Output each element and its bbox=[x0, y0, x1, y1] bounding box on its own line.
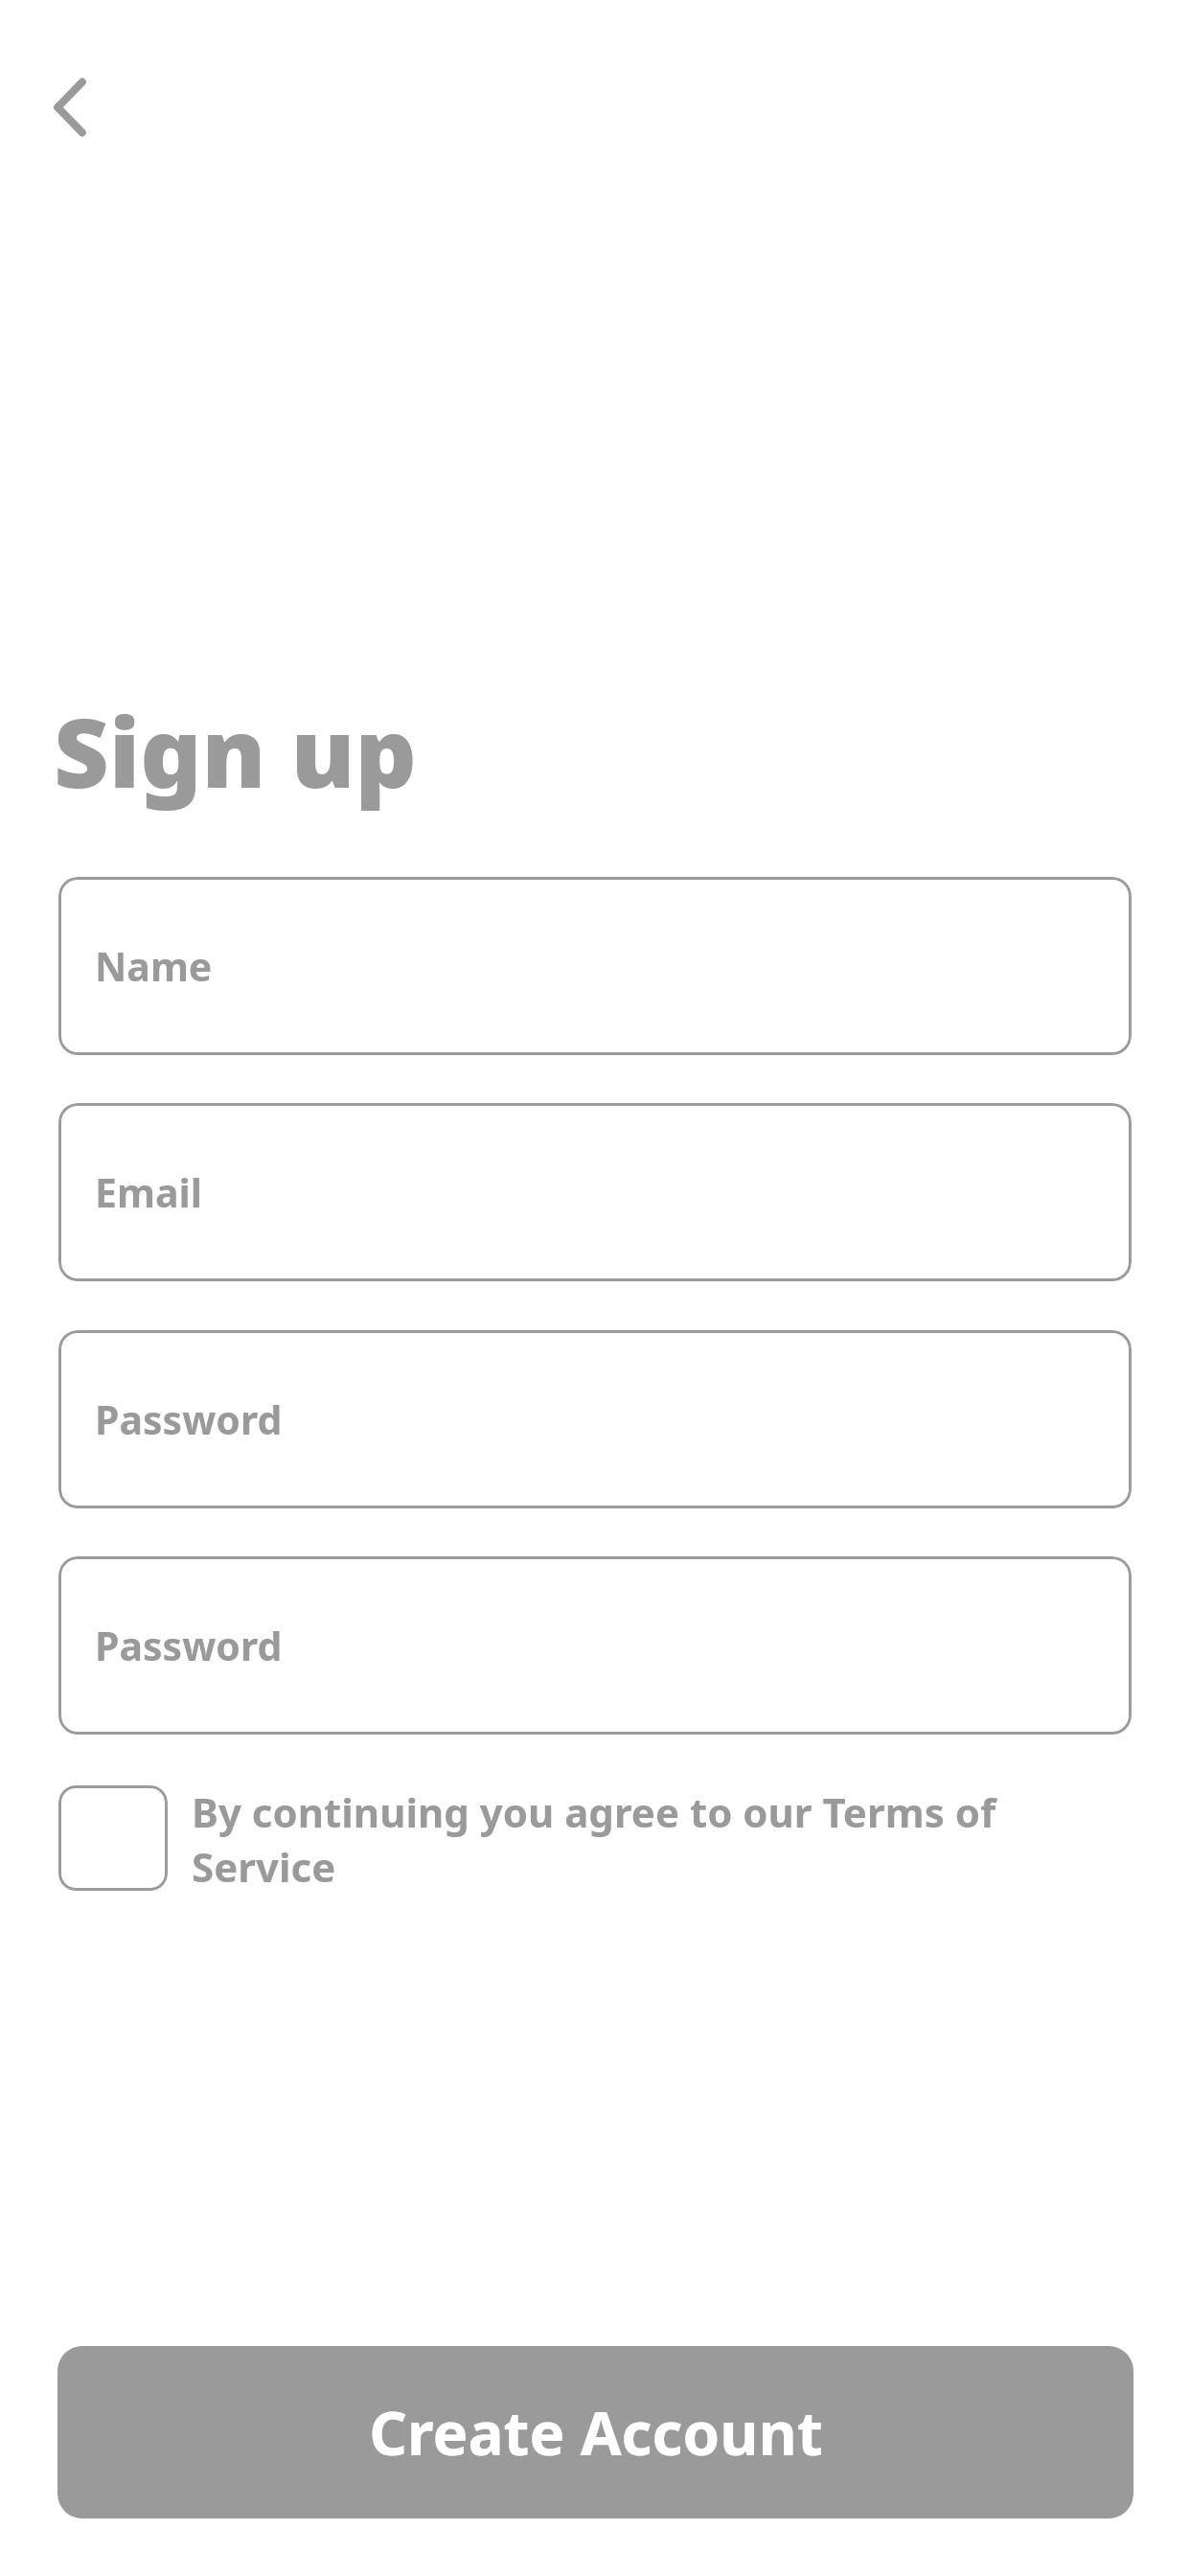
button[interactable]: Email bbox=[58, 1103, 1132, 1281]
staticText: Name bbox=[95, 939, 213, 993]
button[interactable]: Password bbox=[58, 1330, 1132, 1508]
staticText: Password bbox=[95, 1619, 283, 1672]
staticText: Password bbox=[95, 1392, 283, 1446]
staticText: Email bbox=[95, 1165, 202, 1219]
button[interactable]: Back bbox=[19, 50, 121, 165]
staticText: By continuing you agree to our Terms of … bbox=[192, 1784, 1093, 1892]
staticText: Sign up bbox=[54, 685, 417, 816]
button[interactable]: Password bbox=[58, 1556, 1132, 1735]
staticText: Create Account bbox=[369, 2392, 823, 2472]
button[interactable]: Create Account bbox=[57, 2346, 1133, 2518]
button[interactable]: By continuing you agree to our Terms of … bbox=[58, 1784, 1093, 1892]
button[interactable]: Name bbox=[58, 877, 1132, 1055]
